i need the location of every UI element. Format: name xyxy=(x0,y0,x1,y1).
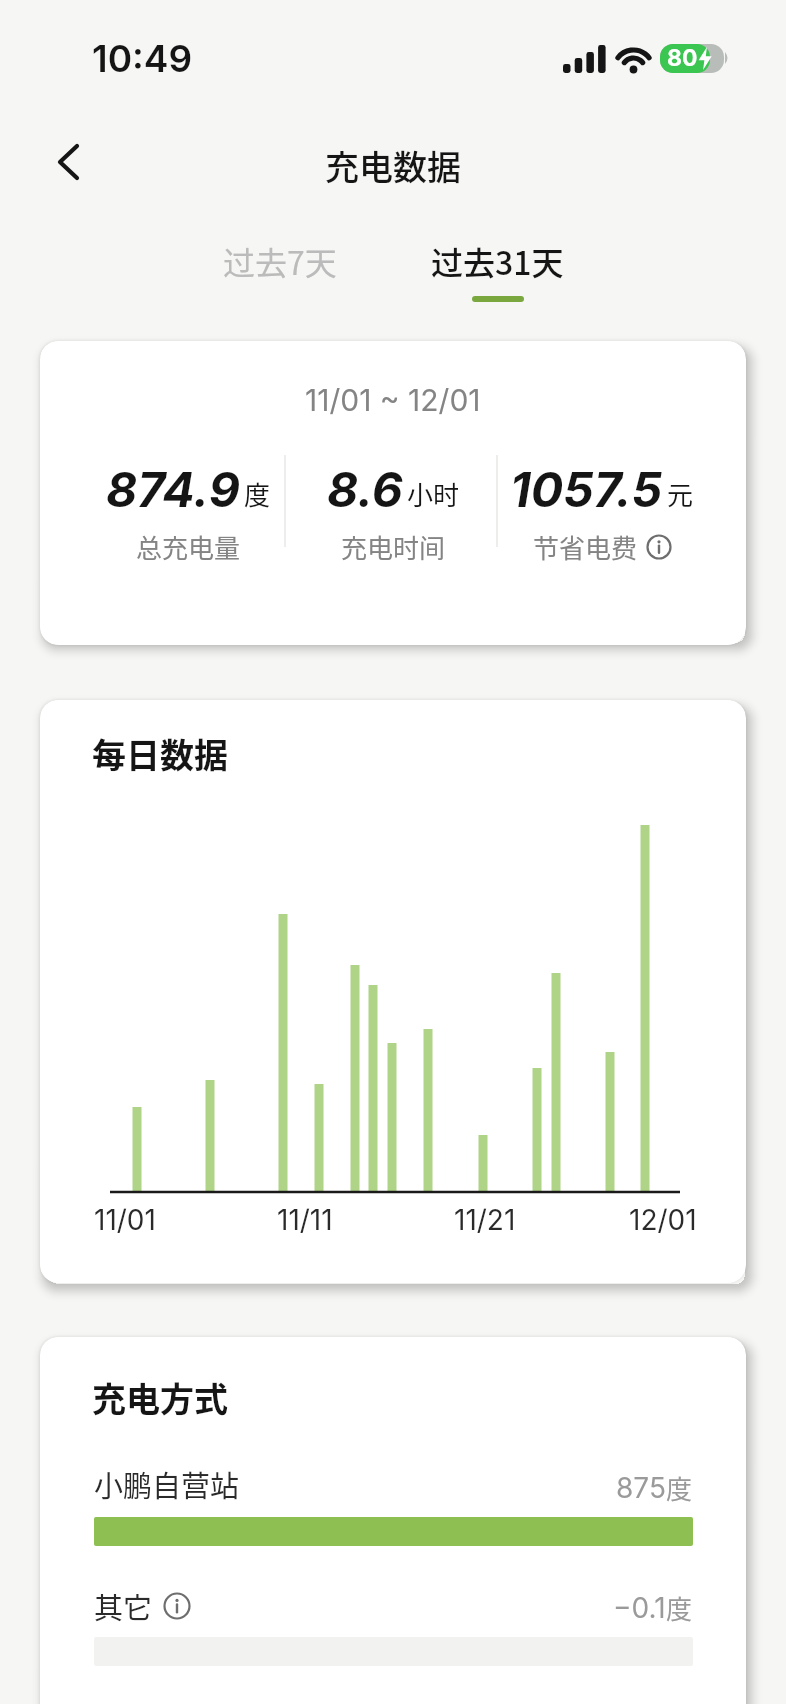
staticText: 过去31天 xyxy=(431,238,564,284)
staticText: 节省电费 xyxy=(533,528,638,566)
button[interactable] xyxy=(40,134,96,190)
button[interactable]: 节省电费 xyxy=(492,527,712,567)
button[interactable]: 过去7天 xyxy=(170,234,390,288)
staticText: 80 xyxy=(667,44,698,72)
staticText: 充电方式 xyxy=(92,1373,228,1422)
staticText: 11/01 xyxy=(94,1203,156,1237)
staticText: 小时 xyxy=(407,475,460,513)
staticText: 11/11 xyxy=(277,1203,333,1237)
staticText: 其它 xyxy=(94,1585,153,1627)
staticText: 10:49 xyxy=(92,36,193,80)
staticText: 875 xyxy=(616,1471,666,1505)
staticText: −0.1 xyxy=(613,1591,666,1625)
staticText: 充电数据 xyxy=(325,141,461,190)
staticText: 小鹏自营站 xyxy=(94,1463,240,1505)
staticText: 度 xyxy=(666,1469,693,1505)
staticText: 度 xyxy=(666,1589,693,1625)
button[interactable]: 过去31天 xyxy=(387,234,607,288)
staticText: 11/01 ~ 12/01 xyxy=(305,382,481,418)
staticText: 874.9 xyxy=(106,460,240,518)
staticText: 度 xyxy=(244,475,271,513)
staticText: 12/01 xyxy=(629,1203,697,1237)
staticText: 11/21 xyxy=(454,1203,516,1237)
staticText: 1057.5 xyxy=(510,460,663,518)
staticText: 过去7天 xyxy=(223,238,337,284)
staticText: 元 xyxy=(667,475,694,513)
button[interactable]: 其它 xyxy=(94,1585,191,1627)
staticText: 每日数据 xyxy=(92,729,228,778)
staticText: 8.6 xyxy=(327,460,403,518)
staticText: 充电时间 xyxy=(341,528,446,566)
staticText: 总充电量 xyxy=(136,528,241,566)
